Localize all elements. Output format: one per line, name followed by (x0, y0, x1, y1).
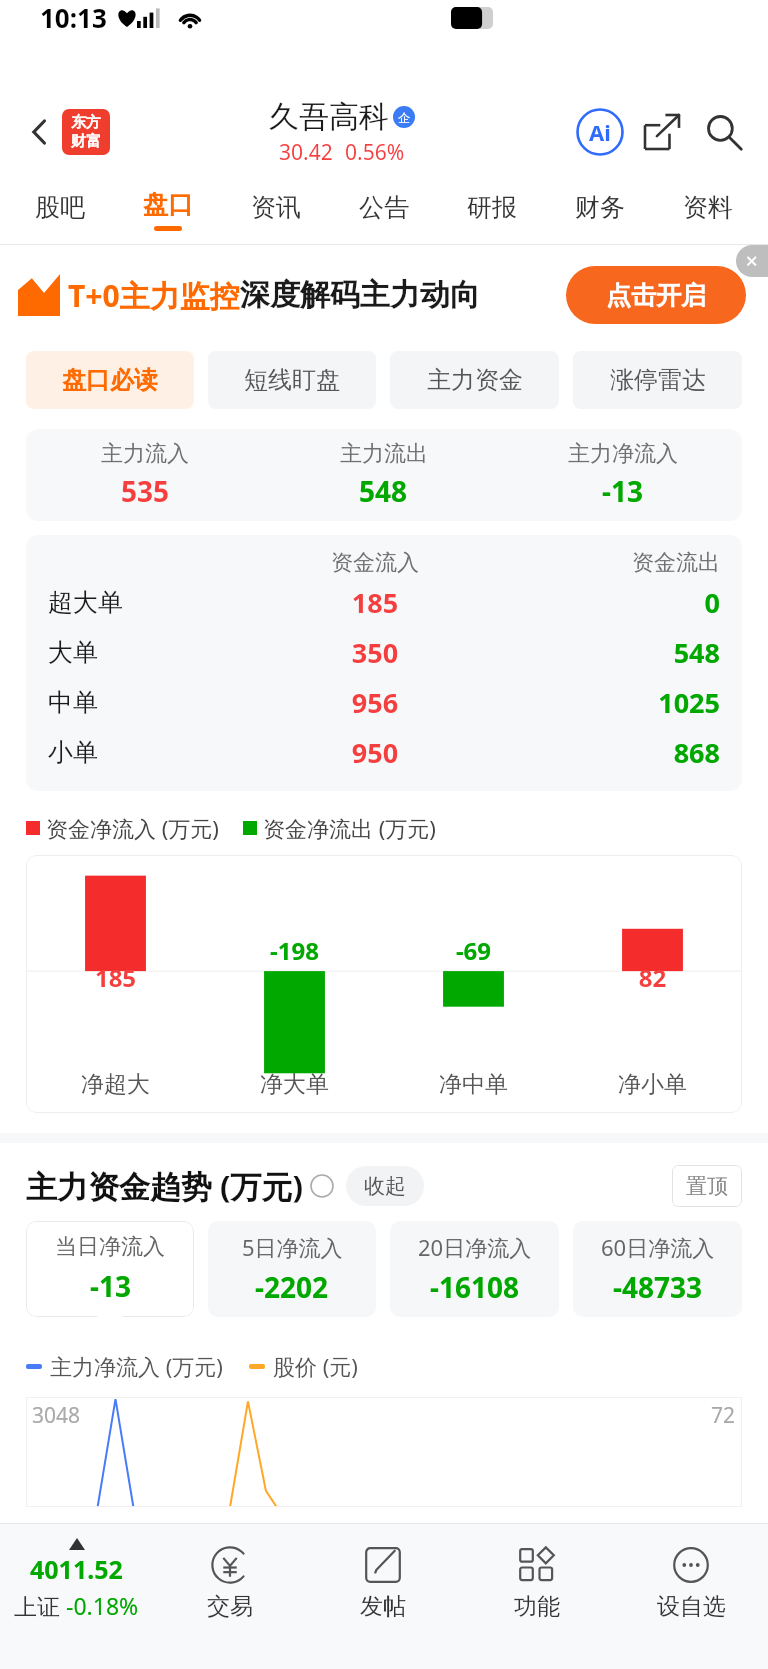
button[interactable]: 资料 (654, 176, 762, 244)
staticText: T+0主力监控 (68, 275, 240, 316)
staticText: -69 (384, 934, 563, 967)
staticText: 收起 (364, 1173, 406, 1199)
button[interactable]: 财务 (546, 176, 654, 244)
staticText: 功能 (514, 1592, 560, 1621)
staticText: 企 (398, 110, 410, 125)
staticText: 868 (490, 734, 720, 771)
staticText: 主力净流入 (568, 440, 678, 468)
staticText: 0.56% (345, 138, 405, 167)
staticText: 股价 (元) (273, 1351, 358, 1381)
staticText: 0 (490, 584, 720, 621)
button[interactable]: 中单 (48, 677, 720, 727)
button[interactable]: 盘口必读 (26, 351, 194, 409)
staticText: 20日净流入 (418, 1232, 532, 1262)
staticText: 60日净流入 (601, 1232, 715, 1262)
staticText: 主力流出 (340, 440, 428, 468)
staticText: 研报 (467, 192, 517, 223)
staticText: 956 (260, 684, 490, 721)
button[interactable]: 功能 (460, 1524, 614, 1669)
staticText: 大单 (48, 637, 260, 668)
staticText: 主力资金趋势 (万元) (26, 1165, 304, 1207)
staticText: 涨停雷达 (610, 365, 706, 395)
staticText: 设自选 (657, 1592, 726, 1621)
staticText: ✕ (745, 252, 759, 271)
button[interactable]: 盘口 (114, 176, 222, 244)
staticText: 净超大 (26, 1070, 205, 1099)
staticText: 点击开启 (606, 280, 706, 311)
staticText: 盘口必读 (62, 365, 158, 395)
button[interactable]: 交易 (153, 1524, 306, 1669)
staticText: 当日净流入 (55, 1233, 165, 1261)
button[interactable]: 4011.52 (0, 1524, 153, 1669)
button[interactable]: 置顶 (686, 1173, 728, 1199)
staticText: 主力净流入 (万元) (50, 1351, 223, 1381)
button[interactable]: 主力资金 (390, 351, 559, 409)
button[interactable]: 小单 (48, 727, 720, 777)
staticText: 东方 (71, 113, 101, 132)
button[interactable]: East Money (62, 109, 110, 155)
staticText: -13 (90, 1267, 131, 1305)
staticText: 公告 (359, 192, 409, 223)
staticText: 中单 (48, 687, 260, 718)
staticText: 548 (490, 634, 720, 671)
staticText: -198 (205, 934, 384, 967)
staticText: 发帖 (360, 1592, 406, 1621)
button[interactable]: 收起 (364, 1173, 406, 1199)
staticText: 超大单 (48, 587, 260, 618)
button[interactable]: 主力流入 (26, 429, 742, 521)
button[interactable]: Back (18, 110, 62, 154)
staticText: 小单 (48, 737, 260, 768)
button[interactable]: 20日净流入 (390, 1221, 559, 1317)
staticText: 82 (563, 961, 742, 994)
staticText: 净小单 (563, 1070, 742, 1099)
staticText: 盘口 (143, 189, 193, 220)
staticText: 535 (121, 472, 170, 510)
button[interactable]: Search (698, 106, 750, 158)
button[interactable]: 公告 (330, 176, 438, 244)
staticText: -48733 (613, 1268, 703, 1306)
staticText: 资金流出 (490, 549, 720, 577)
staticText: 资料 (683, 192, 733, 223)
staticText: 交易 (207, 1592, 253, 1621)
staticText: 资讯 (251, 192, 301, 223)
button[interactable]: 点击开启 (566, 266, 746, 324)
button[interactable]: 超大单 (48, 577, 720, 627)
button[interactable]: 5日净流入 (208, 1221, 376, 1317)
button[interactable]: 发帖 (306, 1524, 460, 1669)
staticText: 短线盯盘 (244, 365, 340, 395)
staticText: 净大单 (205, 1070, 384, 1099)
staticText: 5日净流入 (242, 1232, 343, 1262)
staticText: 350 (260, 634, 490, 671)
staticText: 资金净流入 (万元) (46, 813, 219, 843)
staticText: 4011.52 (30, 1552, 123, 1586)
button[interactable]: 股吧 (6, 176, 114, 244)
other: Info (310, 1174, 334, 1198)
button[interactable]: Close (736, 245, 768, 277)
staticText: 久吾高科 (269, 98, 389, 136)
staticText: 185 (26, 961, 205, 994)
button[interactable]: 短线盯盘 (208, 351, 376, 409)
staticText: 主力资金 (427, 365, 523, 395)
staticText: 主力流入 (101, 440, 189, 468)
staticText: 72 (711, 1401, 736, 1430)
button[interactable]: Share (636, 106, 688, 158)
button[interactable]: 涨停雷达 (573, 351, 742, 409)
staticText: -13 (602, 472, 643, 510)
staticText: 10:13 (40, 0, 107, 35)
button[interactable]: AI assistant (574, 106, 626, 158)
staticText: 资金净流出 (万元) (263, 813, 436, 843)
staticText: 股吧 (35, 192, 85, 223)
button[interactable]: 资讯 (222, 176, 330, 244)
button[interactable]: 设自选 (614, 1524, 768, 1669)
staticText: 置顶 (686, 1173, 728, 1199)
button[interactable]: 大单 (48, 627, 720, 677)
staticText: 1025 (490, 684, 720, 721)
staticText: 3048 (32, 1401, 81, 1430)
staticText: 深度解码主力动向 (240, 276, 480, 314)
button[interactable]: 研报 (438, 176, 546, 244)
staticText: -2202 (255, 1268, 329, 1306)
button[interactable]: 60日净流入 (573, 1221, 742, 1317)
staticText: 548 (359, 472, 408, 510)
button[interactable]: 当日净流入 (26, 1221, 194, 1317)
